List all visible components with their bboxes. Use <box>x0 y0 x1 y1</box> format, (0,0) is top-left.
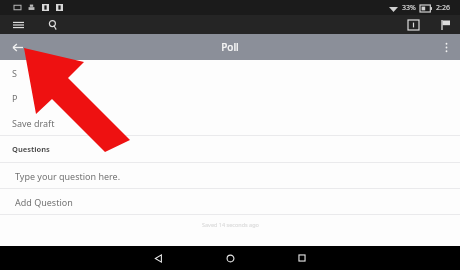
staticText: Questions <box>12 144 50 154</box>
button[interactable]: More options <box>432 34 460 60</box>
button[interactable]: Type your question here. <box>0 163 460 188</box>
button[interactable]: Recents <box>266 246 338 270</box>
staticText: Poll <box>221 40 239 54</box>
button[interactable]: Save draft <box>0 110 460 135</box>
button[interactable]: Back <box>122 246 194 270</box>
button[interactable]: Back <box>0 34 34 60</box>
button[interactable]: Menu <box>0 15 36 34</box>
staticText: Type your question here. <box>15 170 121 182</box>
button[interactable]: Add Question <box>0 189 460 214</box>
button[interactable]: Home <box>194 246 266 270</box>
button[interactable]: P <box>0 85 460 110</box>
staticText: P <box>12 92 18 104</box>
staticText: Saved 14 seconds ago <box>202 221 259 228</box>
button[interactable]: Search <box>36 15 70 34</box>
button[interactable]: S <box>0 60 460 85</box>
staticText: S <box>12 67 17 79</box>
button[interactable]: Bookmark <box>430 15 460 34</box>
staticText: Save draft <box>12 117 55 129</box>
staticText: 33% <box>402 3 416 13</box>
staticText: 2:26 <box>436 3 450 13</box>
button[interactable]: Tabs <box>396 15 430 34</box>
staticText: Add Question <box>15 196 73 208</box>
